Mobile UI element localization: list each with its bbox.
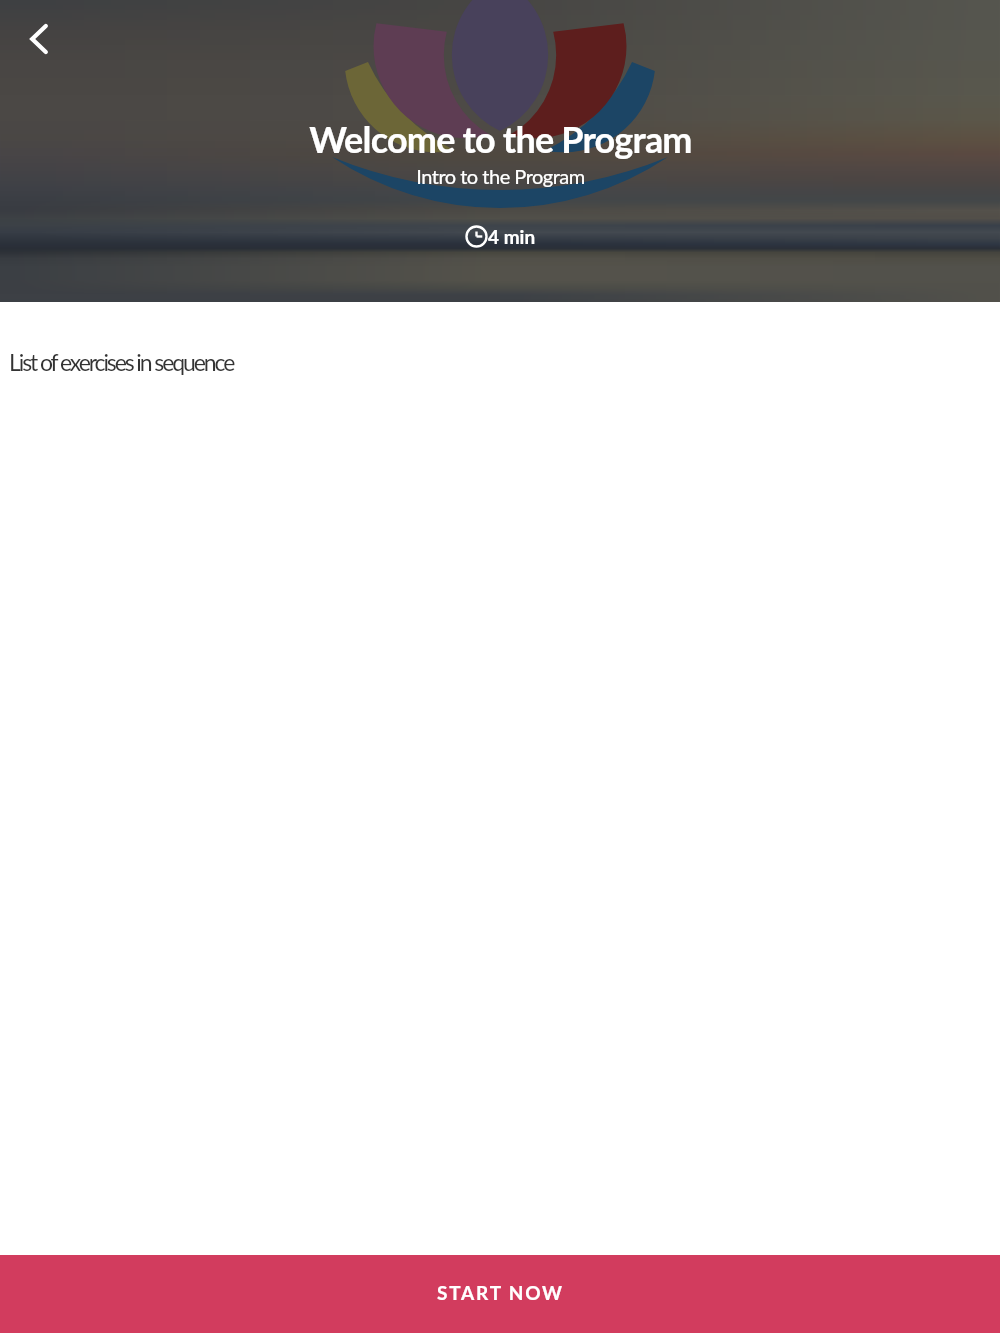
staticText: START NOW [437,1281,564,1304]
staticText: Welcome to the Program [309,117,692,160]
button[interactable]: Back [11,11,67,67]
staticText: Intro to the Program [416,164,585,188]
button[interactable]: START NOW [0,1255,1000,1333]
staticText: 4 min [488,225,536,248]
staticText: List of exercises in sequence [9,348,234,376]
